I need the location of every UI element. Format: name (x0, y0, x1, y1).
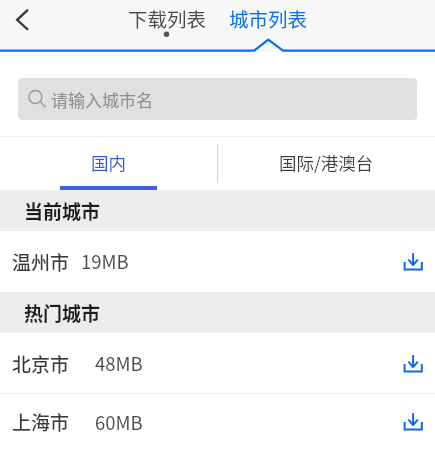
button[interactable]: Download (396, 404, 432, 440)
button[interactable]: 请输入城市名 (18, 78, 417, 120)
staticText: 温州市 (12, 248, 70, 276)
button[interactable]: Download (396, 244, 432, 280)
button[interactable]: Download (396, 346, 432, 382)
staticText: 北京市 (12, 350, 70, 378)
button[interactable]: Back (0, 0, 44, 46)
staticText: 下载列表 (128, 4, 207, 32)
button[interactable]: 城市列表 (228, 2, 309, 34)
staticText: 国内 (91, 150, 126, 175)
button[interactable]: 温州市 (0, 231, 435, 292)
staticText: 热门城市 (24, 299, 101, 327)
button[interactable]: 下载列表 (127, 2, 208, 34)
staticText: 城市列表 (229, 4, 308, 32)
button[interactable]: 上海市 (0, 394, 435, 450)
staticText: 请输入城市名 (51, 87, 153, 112)
staticText: 当前城市 (24, 197, 101, 225)
button[interactable]: 国内 (0, 137, 217, 190)
staticText: 48MB (95, 350, 143, 377)
button[interactable]: 北京市 (0, 333, 435, 394)
staticText: 上海市 (12, 408, 70, 436)
button[interactable]: 国际/港澳台 (217, 137, 435, 190)
staticText: 60MB (95, 409, 143, 436)
staticText: 国际/港澳台 (279, 150, 374, 175)
staticText: 19MB (81, 248, 129, 275)
